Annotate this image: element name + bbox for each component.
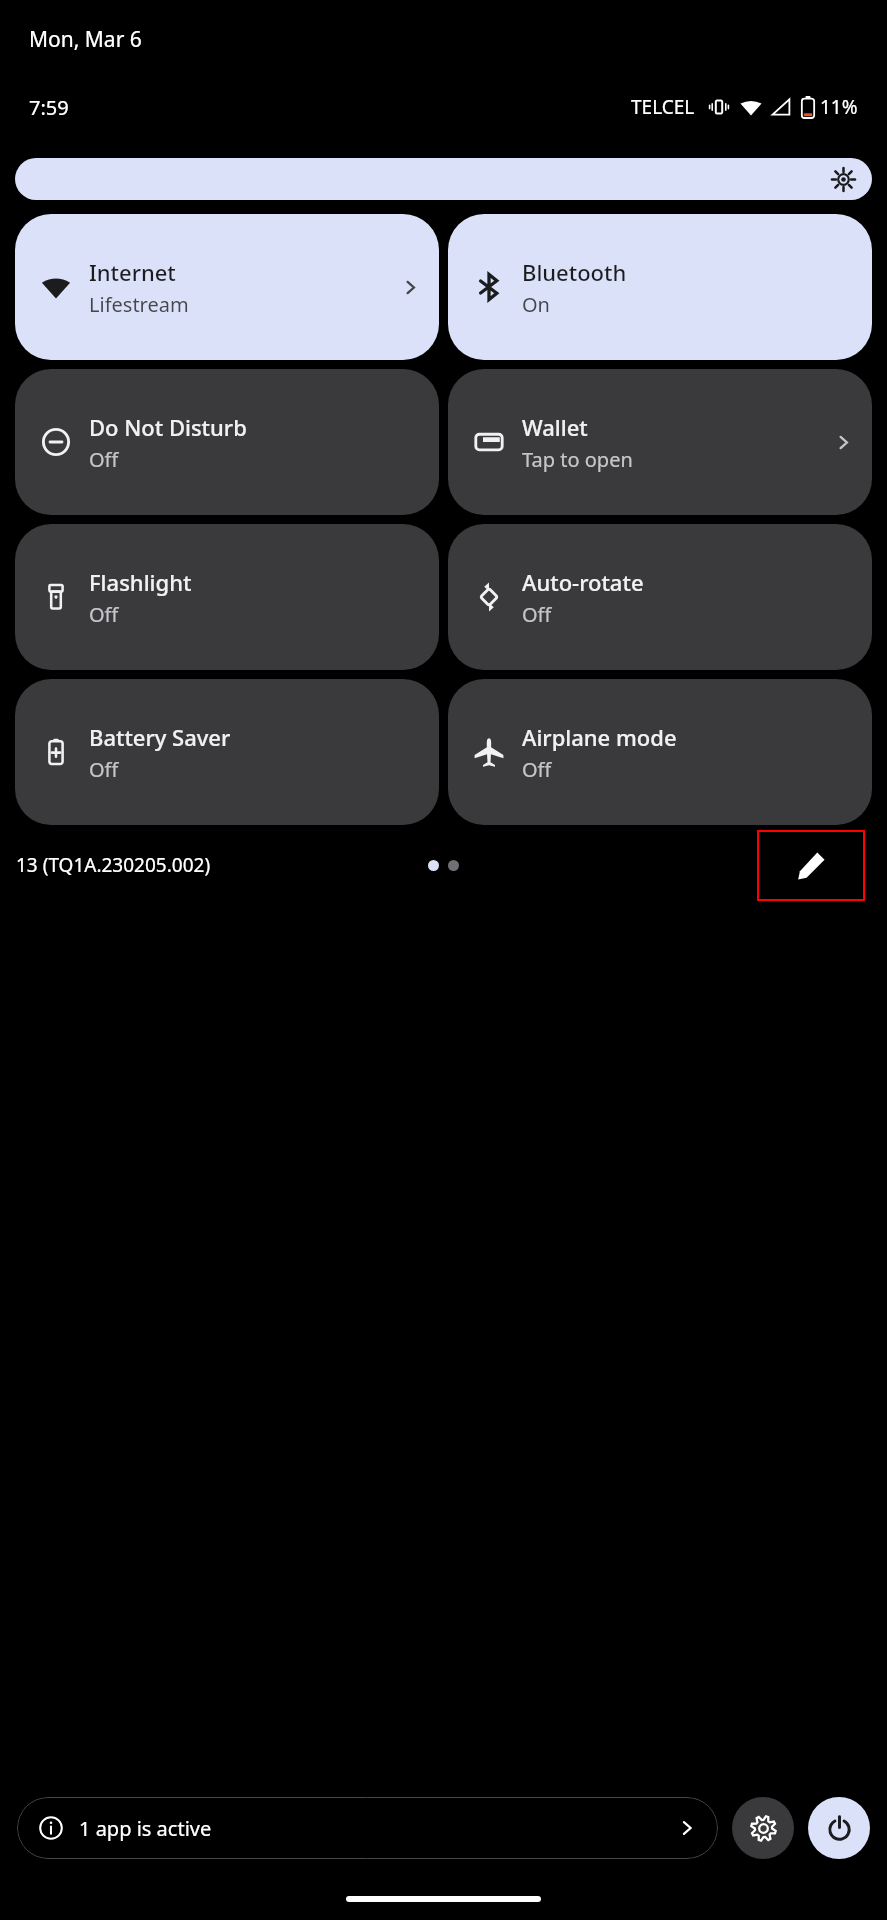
button[interactable]: Wallet [448,369,872,515]
staticText: 7:59 [29,94,69,121]
button[interactable]: 1 app is active [17,1797,718,1859]
staticText: Off [89,756,119,783]
button[interactable]: Airplane mode [448,679,872,825]
button[interactable]: Flashlight [15,524,439,670]
button[interactable]: Power [808,1797,870,1859]
staticText: Bluetooth [522,257,627,287]
button[interactable]: Edit tiles [757,830,865,901]
button[interactable]: Settings [732,1797,794,1859]
staticText: Auto-rotate [522,567,644,597]
staticText: Battery Saver [89,722,231,752]
staticText: On [522,291,550,318]
staticText: Wallet [522,412,588,442]
staticText: Lifestream [89,291,189,318]
button[interactable]: Internet [15,214,439,360]
staticText: Off [89,601,119,628]
staticText: Tap to open [522,446,633,473]
staticText: Airplane mode [522,722,677,752]
staticText: Do Not Disturb [89,412,247,442]
staticText: Off [522,756,552,783]
staticText: TELCEL [631,94,695,120]
staticText: Off [89,446,119,473]
staticText: 13 (TQ1A.230205.002) [16,852,211,878]
staticText: Internet [89,257,176,287]
staticText: 1 app is active [79,1815,212,1842]
staticText: Off [522,601,552,628]
staticText: Flashlight [89,567,192,597]
button[interactable]: Bluetooth [448,214,872,360]
staticText: Mon, Mar 6 [29,25,142,54]
button[interactable]: Do Not Disturb [15,369,439,515]
staticText: 11% [820,94,858,120]
button[interactable]: Auto-rotate [448,524,872,670]
button[interactable]: Battery Saver [15,679,439,825]
button[interactable]: Brightness [15,158,872,200]
